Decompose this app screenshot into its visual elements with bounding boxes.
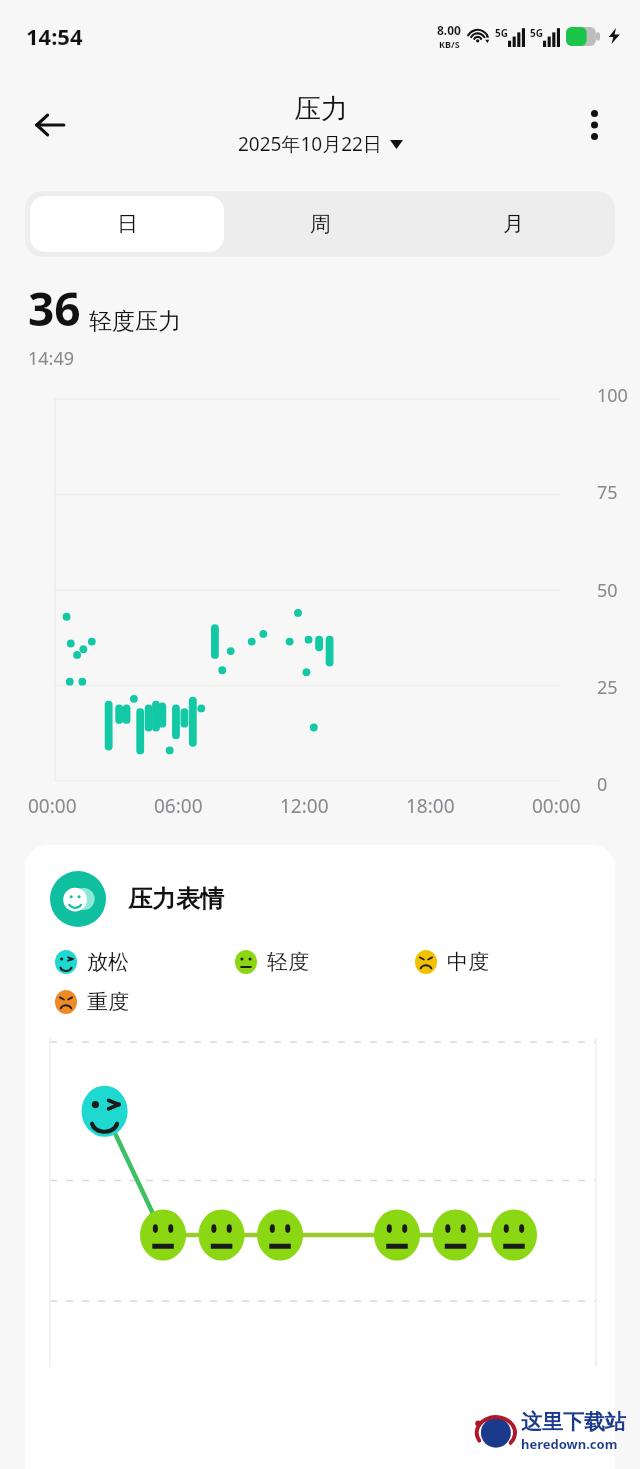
staticText: KB/S [439, 38, 460, 50]
staticText: 周 [310, 211, 331, 237]
staticText: 0 [597, 772, 608, 797]
staticText: 06:00 [154, 793, 203, 819]
button[interactable]: 中度 [413, 949, 593, 975]
staticText: 5G [530, 26, 543, 40]
button[interactable]: 2025年10月22日 [234, 130, 407, 158]
staticText: 12:00 [280, 793, 329, 819]
staticText: 轻度压力 [89, 307, 181, 336]
button[interactable]: More options [568, 99, 620, 151]
staticText: 压力 [294, 92, 348, 126]
staticText: 中度 [447, 949, 489, 975]
button[interactable]: Back [22, 97, 78, 153]
staticText: 100 [597, 383, 628, 408]
staticText: 2025年10月22日 [238, 131, 382, 157]
staticText: 14:49 [28, 346, 75, 371]
staticText: 50 [597, 578, 618, 603]
button[interactable]: 月 [417, 196, 610, 252]
staticText: 18:00 [406, 793, 455, 819]
button[interactable]: 压力表情 [25, 845, 615, 1469]
staticText: 这里下载站 [521, 1409, 626, 1435]
staticText: 25 [597, 675, 618, 700]
button[interactable]: 重度 [53, 989, 240, 1015]
staticText: 5G [495, 26, 508, 40]
button[interactable]: 日 [30, 196, 224, 252]
staticText: 14:54 [26, 21, 83, 51]
staticText: 日 [117, 211, 138, 237]
staticText: heredown.com [521, 1435, 618, 1453]
staticText: 36 [28, 277, 81, 340]
staticText: 00:00 [28, 793, 77, 819]
staticText: 8.00 [437, 22, 461, 38]
staticText: 75 [597, 480, 618, 505]
staticText: 月 [503, 211, 524, 237]
button[interactable]: 轻度 [233, 949, 413, 975]
staticText: 压力表情 [128, 884, 224, 914]
staticText: 轻度 [267, 949, 309, 975]
button[interactable]: 周 [224, 196, 417, 252]
staticText: 重度 [87, 989, 129, 1015]
staticText: 00:00 [532, 793, 581, 819]
button[interactable]: 放松 [53, 949, 233, 975]
staticText: 放松 [87, 949, 129, 975]
